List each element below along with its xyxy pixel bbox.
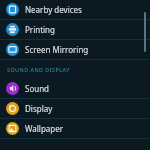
button[interactable]: Display <box>0 99 150 118</box>
staticText: Nearby devices <box>25 4 82 15</box>
staticText: Sound <box>25 83 50 94</box>
staticText: Wallpaper <box>25 123 64 134</box>
staticText: Printing <box>25 24 55 35</box>
button[interactable]: Printing <box>0 20 150 39</box>
staticText: Display <box>25 103 53 114</box>
button[interactable]: Screen Mirroring <box>0 40 150 59</box>
button[interactable]: Wallpaper <box>0 119 150 138</box>
staticText: Screen Mirroring <box>25 44 89 55</box>
staticText: SOUND AND DISPLAY <box>7 66 70 73</box>
button[interactable]: Nearby devices <box>0 0 150 19</box>
button[interactable]: Sound <box>0 79 150 98</box>
